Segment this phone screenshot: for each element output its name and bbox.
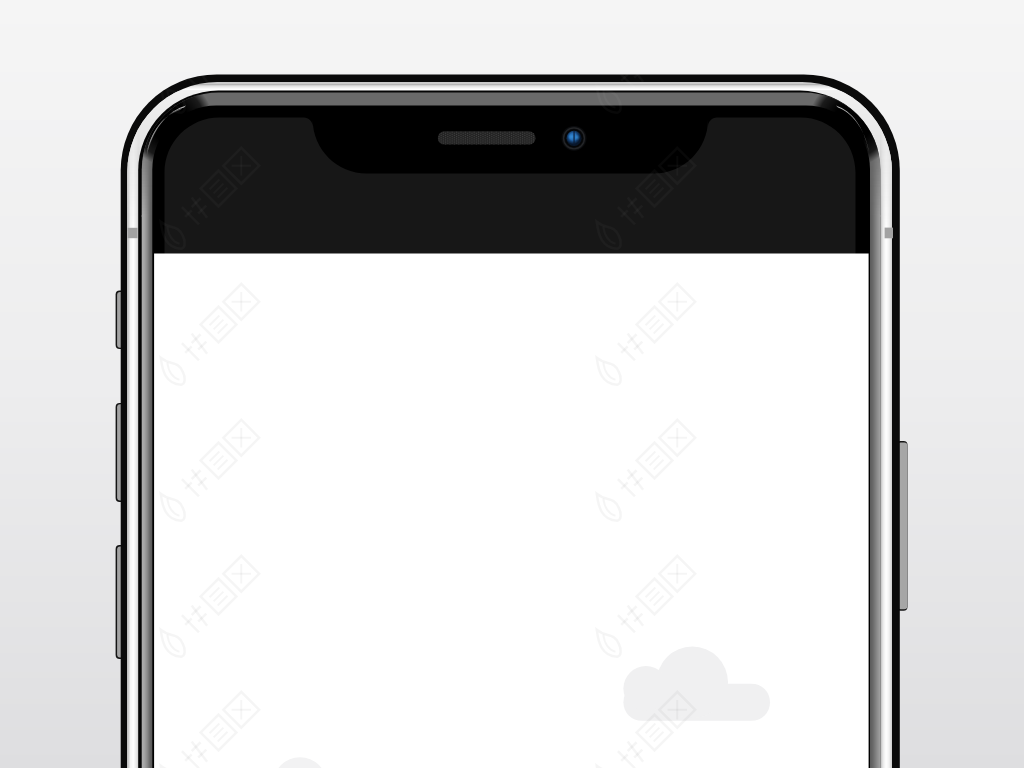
button[interactable]: Smartphone mockup with blank screen [0, 0, 1024, 768]
